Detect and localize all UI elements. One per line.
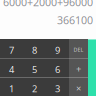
staticText: 7 — [9, 44, 14, 56]
button[interactable]: 6 — [46, 58, 69, 78]
staticText: DEL — [73, 46, 83, 53]
staticText: × — [76, 82, 81, 94]
button[interactable]: 5 — [23, 58, 46, 78]
staticText: 8 — [32, 44, 37, 56]
button[interactable]: 3 — [46, 78, 69, 96]
staticText: 4 — [9, 63, 14, 76]
button[interactable]: 2 — [23, 78, 46, 96]
button[interactable]: 7 — [0, 39, 23, 58]
button[interactable]: 8 — [23, 39, 46, 58]
staticText: + — [76, 63, 81, 75]
button[interactable]: Multiply — [69, 78, 88, 96]
staticText: 6 — [55, 63, 60, 76]
button[interactable]: Delete — [69, 39, 88, 58]
button[interactable]: 9 — [46, 39, 69, 58]
staticText: 2 — [32, 83, 37, 95]
staticText: 1 — [9, 83, 14, 95]
staticText: 3 — [55, 83, 60, 95]
button[interactable]: 4 — [0, 58, 23, 78]
staticText: 366100 — [57, 13, 93, 27]
button[interactable]: Plus — [69, 58, 88, 78]
button[interactable]: 1 — [0, 78, 23, 96]
staticText: 6000+2000+96000 — [3, 0, 93, 9]
staticText: 5 — [32, 63, 37, 76]
staticText: 9 — [55, 44, 60, 56]
